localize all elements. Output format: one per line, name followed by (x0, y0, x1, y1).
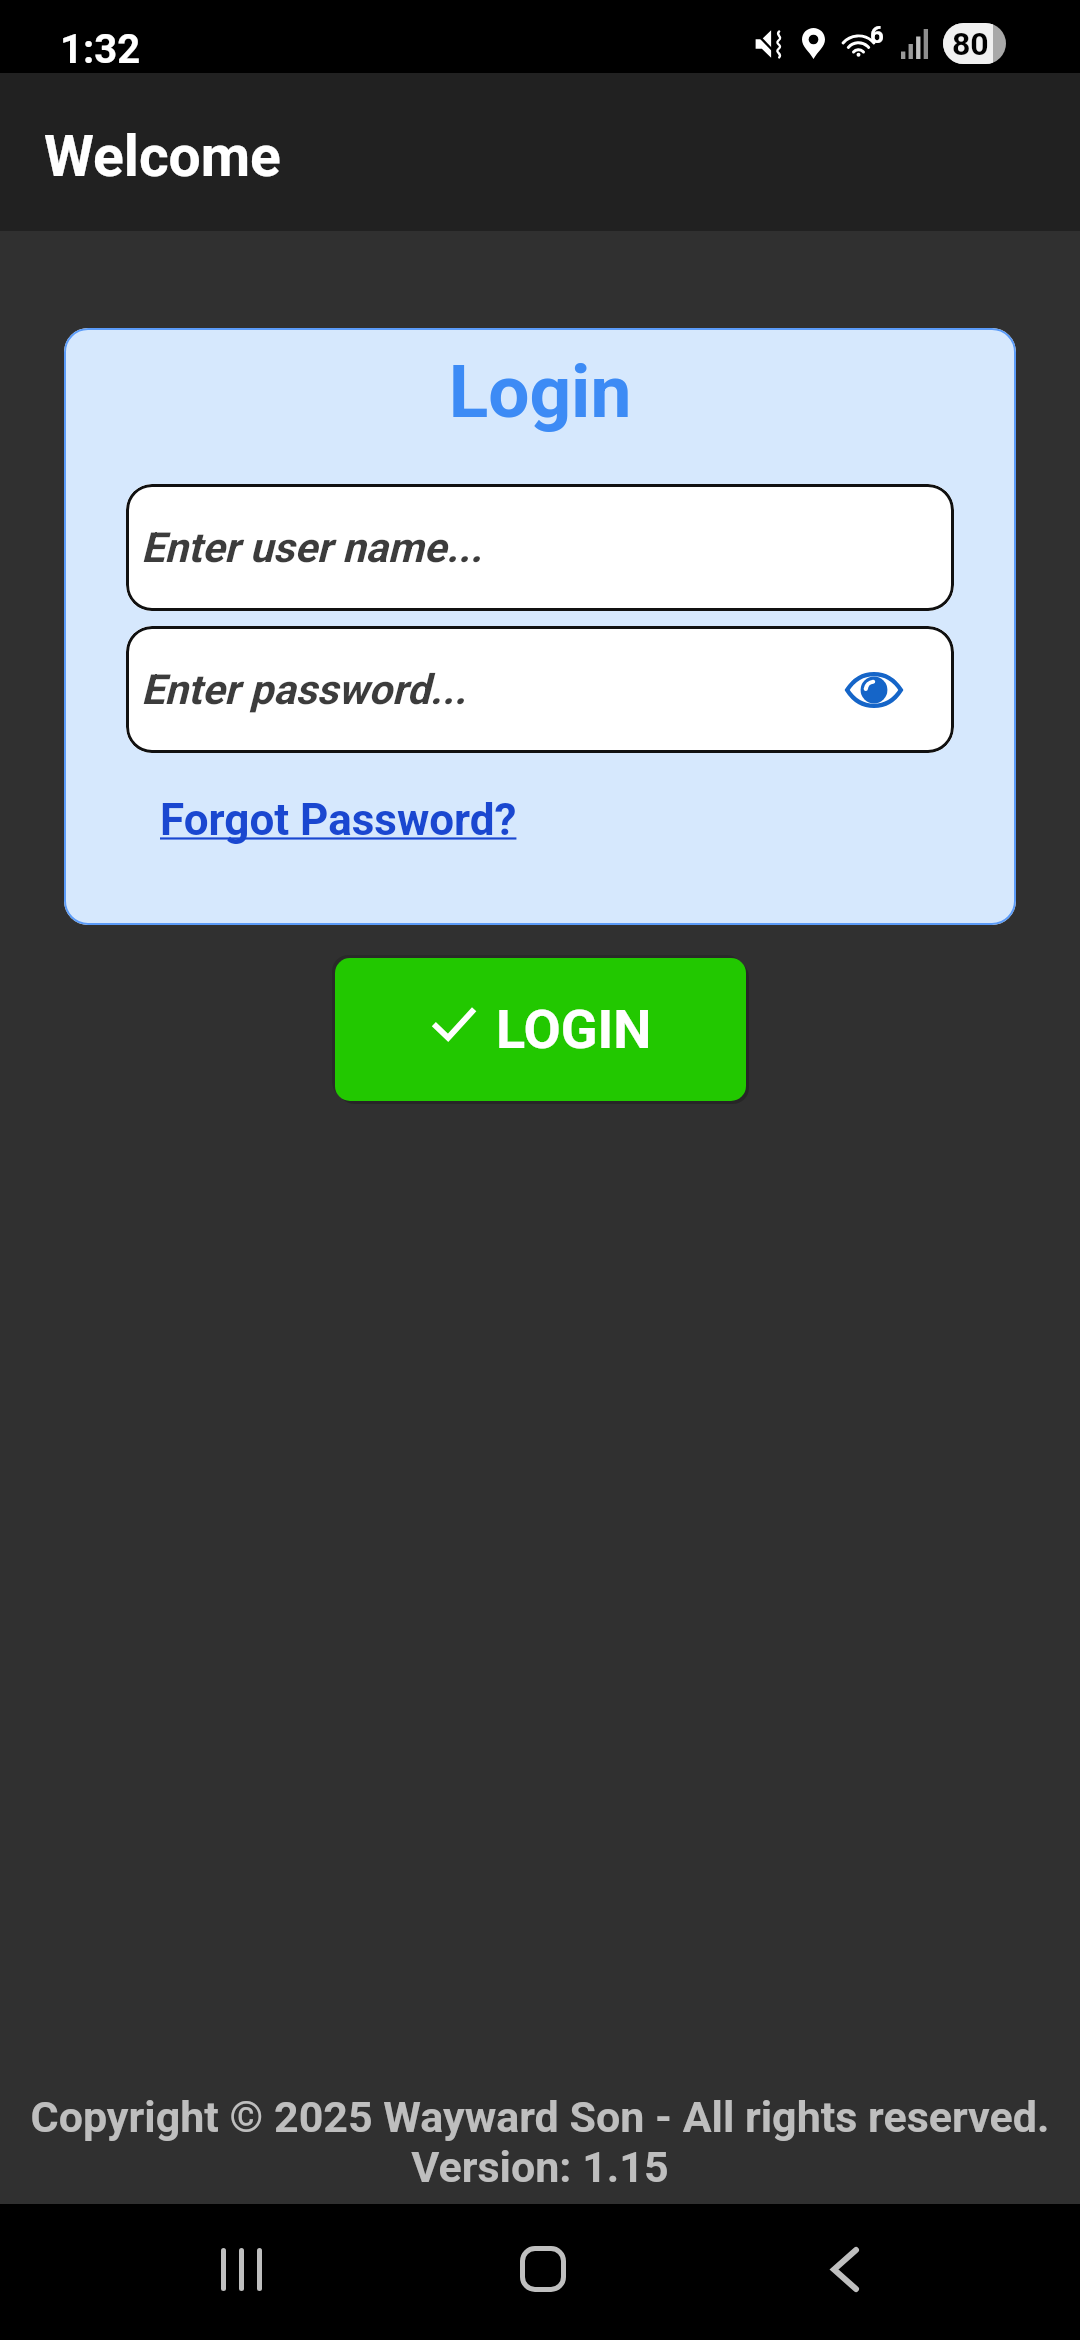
staticText: Copyright © 2025 Wayward Son - All right… (0, 2092, 1080, 2142)
button[interactable]: Enter password... (126, 626, 954, 753)
button[interactable]: Show password (839, 655, 909, 725)
staticText: Forgot Password? (160, 794, 517, 846)
staticText: Version: 1.15 (0, 2142, 1080, 2192)
button[interactable]: Home (453, 2204, 633, 2340)
button[interactable]: Recent apps (151, 2204, 331, 2340)
button[interactable]: Enter user name... (126, 484, 954, 611)
staticText: 80 (952, 25, 989, 63)
staticText: LOGIN (496, 998, 652, 1061)
staticText: Login (64, 349, 1016, 435)
staticText: Welcome (44, 123, 281, 190)
staticText: 6 (870, 21, 884, 49)
staticText: Enter password... (141, 665, 839, 714)
staticText: Enter user name... (141, 523, 909, 572)
button[interactable]: Back (755, 2204, 935, 2340)
staticText: 1:32 (60, 26, 141, 73)
button[interactable]: LOGIN (335, 958, 746, 1101)
button[interactable]: Forgot Password? (160, 794, 517, 846)
